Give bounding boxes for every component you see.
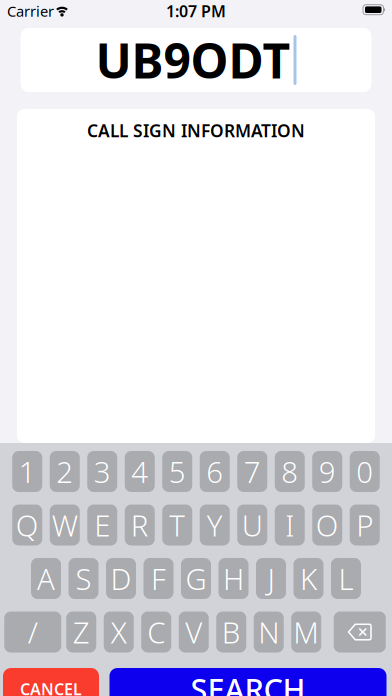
staticText: Q bbox=[16, 505, 39, 544]
button[interactable]: SEARCH bbox=[109, 668, 386, 696]
staticText: 9 bbox=[319, 452, 336, 491]
button[interactable]: N bbox=[254, 611, 284, 652]
staticText: CANCEL bbox=[20, 678, 82, 696]
staticText: D bbox=[110, 559, 131, 598]
staticText: E bbox=[94, 505, 110, 544]
button[interactable]: W bbox=[50, 504, 80, 545]
staticText: P bbox=[356, 505, 373, 544]
staticText: A bbox=[37, 559, 55, 598]
staticText: N bbox=[258, 612, 279, 651]
staticText: SEARCH bbox=[190, 669, 305, 696]
staticText: 4 bbox=[131, 452, 148, 491]
staticText: Y bbox=[207, 505, 223, 544]
button[interactable]: J bbox=[256, 558, 286, 599]
button[interactable]: Call sign bbox=[20, 28, 371, 92]
button[interactable]: D bbox=[106, 558, 136, 599]
staticText: 1 bbox=[19, 452, 36, 491]
button[interactable]: Z bbox=[66, 611, 96, 652]
button[interactable]: 6 bbox=[200, 451, 230, 492]
button[interactable]: 8 bbox=[275, 451, 305, 492]
button[interactable]: G bbox=[181, 558, 211, 599]
button[interactable]: Q bbox=[12, 504, 42, 545]
staticText: 3 bbox=[94, 452, 111, 491]
button[interactable]: 7 bbox=[237, 451, 267, 492]
staticText: X bbox=[111, 612, 127, 651]
staticText: H bbox=[223, 559, 244, 598]
button[interactable]: Delete bbox=[334, 611, 386, 652]
button[interactable]: F bbox=[143, 558, 173, 599]
button[interactable]: 4 bbox=[125, 451, 155, 492]
button[interactable]: T bbox=[162, 504, 192, 545]
button[interactable]: M bbox=[291, 611, 321, 652]
staticText: 0 bbox=[356, 452, 373, 491]
staticText: 6 bbox=[206, 452, 223, 491]
button[interactable]: 1 bbox=[12, 451, 42, 492]
button[interactable]: 9 bbox=[312, 451, 342, 492]
staticText: 2 bbox=[56, 452, 73, 491]
button[interactable]: / bbox=[4, 611, 61, 652]
staticText: Z bbox=[73, 612, 90, 651]
button[interactable]: R bbox=[125, 504, 155, 545]
staticText: S bbox=[75, 559, 91, 598]
button[interactable]: L bbox=[331, 558, 361, 599]
staticText: CALL SIGN INFORMATION bbox=[87, 119, 305, 142]
button[interactable]: H bbox=[218, 558, 248, 599]
button[interactable]: B bbox=[216, 611, 246, 652]
staticText: 7 bbox=[244, 452, 261, 491]
staticText: C bbox=[147, 612, 165, 651]
staticText: UB9ODT bbox=[95, 28, 290, 92]
staticText: F bbox=[151, 559, 166, 598]
staticText: I bbox=[285, 505, 294, 544]
button[interactable]: 0 bbox=[350, 451, 380, 492]
button[interactable]: V bbox=[179, 611, 209, 652]
staticText: U bbox=[242, 505, 263, 544]
staticText: V bbox=[185, 612, 202, 651]
button[interactable]: U bbox=[237, 504, 267, 545]
staticText: L bbox=[338, 559, 353, 598]
staticText: O bbox=[316, 505, 339, 544]
button[interactable]: K bbox=[293, 558, 323, 599]
staticText: M bbox=[293, 612, 319, 651]
staticText: Carrier bbox=[7, 1, 54, 21]
staticText: B bbox=[222, 612, 241, 651]
staticText: J bbox=[267, 559, 274, 598]
button[interactable]: 2 bbox=[50, 451, 80, 492]
button[interactable]: O bbox=[312, 504, 342, 545]
staticText: 1:07 PM bbox=[166, 0, 226, 22]
staticText: T bbox=[169, 505, 185, 544]
staticText: R bbox=[131, 505, 149, 544]
staticText: K bbox=[300, 559, 317, 598]
button[interactable]: A bbox=[31, 558, 61, 599]
button[interactable]: I bbox=[275, 504, 305, 545]
button[interactable]: X bbox=[104, 611, 134, 652]
button[interactable]: C bbox=[141, 611, 171, 652]
staticText: W bbox=[52, 505, 78, 544]
button[interactable]: S bbox=[68, 558, 98, 599]
staticText: 5 bbox=[169, 452, 186, 491]
button[interactable]: 5 bbox=[162, 451, 192, 492]
button[interactable]: E bbox=[87, 504, 117, 545]
button[interactable]: CANCEL bbox=[3, 668, 99, 696]
staticText: 8 bbox=[281, 452, 298, 491]
staticText: / bbox=[28, 612, 38, 651]
button[interactable]: Y bbox=[200, 504, 230, 545]
button[interactable]: P bbox=[350, 504, 380, 545]
staticText: G bbox=[185, 559, 206, 598]
button[interactable]: 3 bbox=[87, 451, 117, 492]
